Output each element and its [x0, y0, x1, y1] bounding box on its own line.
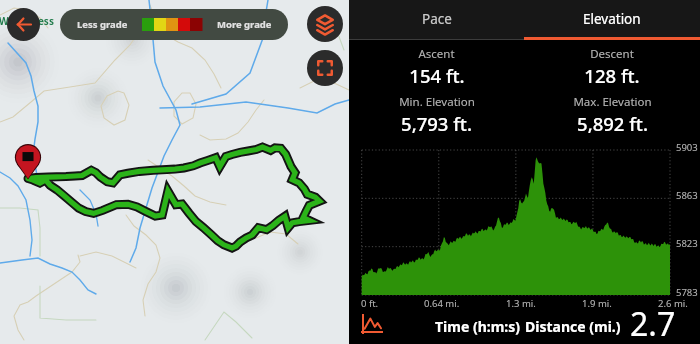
staticText: Pace	[422, 10, 452, 28]
staticText: 5903	[676, 141, 698, 154]
button[interactable]: Map layers	[307, 6, 343, 42]
button[interactable]: Elevation	[524, 0, 700, 40]
staticText: 1.3 mi.	[506, 297, 536, 310]
staticText: Less grade	[77, 18, 128, 31]
button[interactable]: Full screen	[307, 50, 343, 86]
staticText: 128 ft.	[584, 63, 640, 88]
staticText: 154 ft.	[409, 63, 465, 88]
staticText: Max. Elevation	[573, 94, 652, 110]
button[interactable]: Back	[7, 8, 40, 41]
staticText: 0 ft.	[361, 297, 379, 310]
staticText: 2.6 mi.	[658, 297, 688, 310]
staticText: 5,793 ft.	[401, 111, 472, 136]
staticText: Wilderness	[0, 14, 54, 28]
staticText: Distance (mi.)	[525, 317, 621, 336]
staticText: 5783	[676, 286, 698, 299]
staticText: 0.64 mi.	[424, 297, 460, 310]
button[interactable]: Less grade	[60, 9, 288, 40]
staticText: Descent	[590, 46, 634, 62]
staticText: Min. Elevation	[399, 94, 475, 110]
staticText: 5823	[676, 237, 698, 250]
staticText: More grade	[217, 18, 272, 31]
staticText: 5863	[676, 189, 698, 202]
button[interactable]: Pace	[349, 0, 524, 40]
button[interactable]: Graph view	[359, 311, 385, 337]
staticText: Ascent	[418, 46, 455, 62]
staticText: 2.7	[630, 302, 676, 344]
staticText: Elevation	[583, 10, 641, 28]
staticText: 1.9 mi.	[582, 297, 612, 310]
staticText: Time (h:m:s)	[435, 317, 521, 336]
staticText: 5,892 ft.	[577, 111, 648, 136]
